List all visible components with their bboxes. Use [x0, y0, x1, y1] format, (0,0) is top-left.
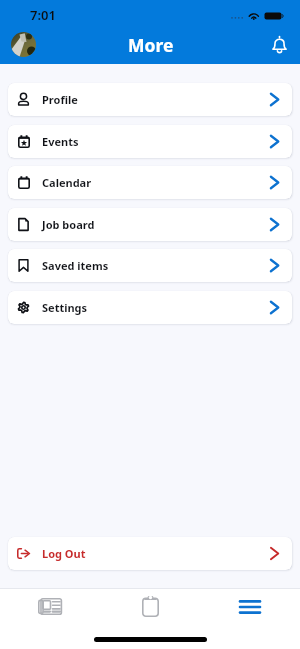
staticText: 7:01: [30, 6, 56, 24]
staticText: Log Out: [42, 546, 86, 561]
staticText: Profile: [42, 92, 78, 107]
button[interactable]: Job board: [8, 208, 292, 241]
button[interactable]: Settings: [8, 291, 292, 324]
staticText: Job board: [42, 217, 95, 232]
staticText: Saved items: [42, 258, 109, 273]
button[interactable]: Log Out: [8, 537, 292, 570]
button[interactable]: Menu: [200, 589, 300, 624]
staticText: Events: [42, 134, 79, 149]
button[interactable]: News: [0, 589, 100, 624]
button[interactable]: Profile: [8, 83, 292, 116]
button[interactable]: Jobs: [100, 589, 200, 624]
button[interactable]: Notifications: [268, 32, 290, 57]
button[interactable]: Saved items: [8, 249, 292, 282]
staticText: Settings: [42, 300, 88, 315]
button[interactable]: Profile photo: [11, 32, 36, 57]
button[interactable]: Calendar: [8, 166, 292, 199]
staticText: More: [128, 33, 174, 57]
staticText: Calendar: [42, 175, 92, 190]
button[interactable]: Events: [8, 125, 292, 158]
